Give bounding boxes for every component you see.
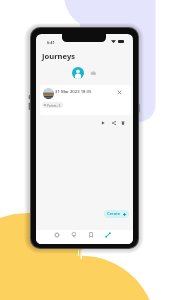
staticText: Journeys — [42, 51, 76, 61]
button[interactable]: Create — [104, 210, 129, 218]
button[interactable]: Account — [72, 67, 84, 79]
staticText: Points: 3 — [47, 103, 61, 107]
button[interactable]: 31 Mar 2023 18:35 — [40, 85, 131, 115]
staticText: Create — [107, 211, 121, 217]
button[interactable]: Saved — [86, 230, 96, 240]
button[interactable]: Play — [99, 119, 106, 126]
button[interactable]: Settings — [52, 230, 62, 240]
button[interactable]: Delete — [119, 119, 126, 126]
button[interactable]: Close — [116, 89, 123, 96]
staticText: 31 Mar 2023 18:35 — [55, 89, 92, 95]
button[interactable]: Places — [69, 230, 79, 240]
button[interactable]: Share — [110, 119, 117, 126]
staticText: 6:41 — [47, 40, 55, 45]
button[interactable]: Points: 3 — [42, 102, 63, 108]
button[interactable]: Journeys — [103, 230, 113, 240]
